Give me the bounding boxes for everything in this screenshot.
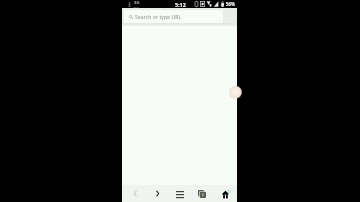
button[interactable]: Home [215, 185, 234, 202]
staticText: Search or type URL [135, 13, 182, 20]
button[interactable]: Forward [148, 185, 167, 202]
staticText: 5:12 [175, 1, 186, 8]
button[interactable]: Back [125, 185, 144, 202]
staticText: 3G [134, 0, 140, 6]
staticText: 56% [226, 1, 235, 7]
staticText: HSPA [133, 5, 140, 8]
button[interactable]: Menu [170, 185, 189, 202]
button[interactable]: Tabs [192, 185, 211, 202]
button[interactable]: Search or type URL [124, 10, 223, 23]
